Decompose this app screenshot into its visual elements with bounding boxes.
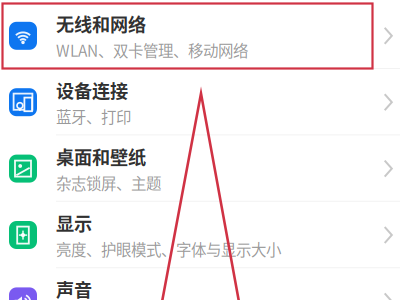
staticText: 声音 xyxy=(56,276,92,300)
button[interactable]: 桌面和壁纸 xyxy=(0,135,400,202)
button[interactable]: 声音 xyxy=(0,268,400,300)
button[interactable]: 无线和网络 xyxy=(0,3,400,69)
button[interactable]: 设备连接 xyxy=(0,69,400,135)
staticText: 桌面和壁纸 xyxy=(56,143,146,170)
staticText: 杂志锁屏、主题 xyxy=(56,171,161,194)
staticText: 蓝牙、打印 xyxy=(56,105,131,127)
staticText: 设备连接 xyxy=(56,77,128,103)
button[interactable]: 显示 xyxy=(0,202,400,268)
staticText: 显示 xyxy=(56,210,92,236)
staticText: WLAN、双卡管理、移动网络 xyxy=(56,39,248,61)
staticText: 亮度、护眼模式、字体与显示大小 xyxy=(56,238,281,260)
staticText: 无线和网络 xyxy=(56,10,146,37)
